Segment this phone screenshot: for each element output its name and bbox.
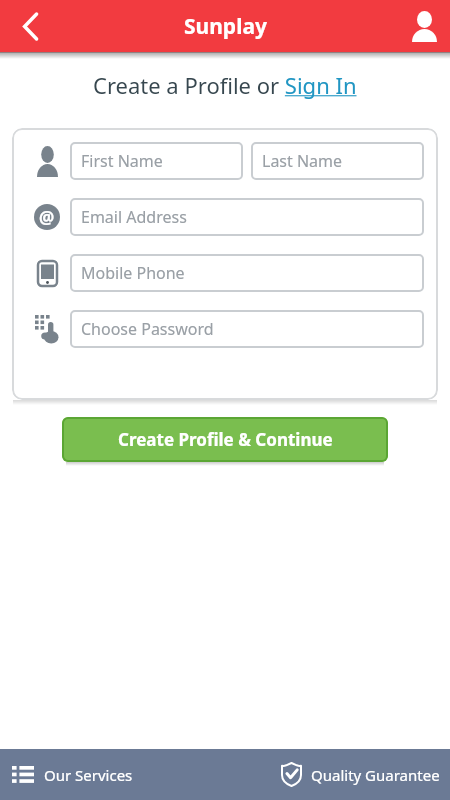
staticText: @ (39, 206, 55, 229)
staticText: Create Profile & Continue (118, 428, 333, 451)
staticText: Our Services (44, 765, 133, 785)
staticText: Last Name (262, 150, 343, 172)
staticText: Choose Password (81, 318, 214, 340)
staticText: Mobile Phone (81, 262, 185, 284)
staticText: Quality Guarantee (311, 765, 440, 785)
button[interactable]: Create a Profile or Sign In (93, 70, 357, 100)
button[interactable]: Quality Guarantee (282, 749, 450, 800)
button[interactable]: Last Name (262, 142, 424, 180)
button[interactable]: Mobile Phone (81, 254, 424, 292)
button[interactable]: Our Services (0, 749, 133, 800)
staticText: Email Address (81, 206, 187, 228)
button[interactable] (0, 0, 52, 52)
button[interactable]: Create Profile & Continue (62, 417, 388, 462)
staticText: Sunplay (184, 12, 267, 41)
button[interactable]: Choose Password (81, 310, 424, 348)
button[interactable]: First Name (81, 142, 243, 180)
button[interactable] (398, 0, 450, 52)
staticText: First Name (81, 150, 163, 172)
button[interactable]: Email Address (81, 198, 424, 236)
